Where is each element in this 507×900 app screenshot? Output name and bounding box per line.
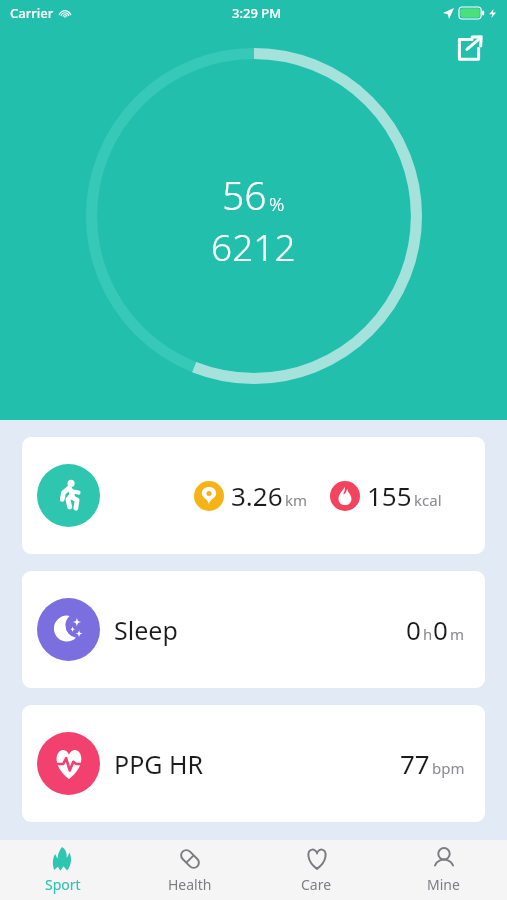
staticText: 6212 [211,221,296,271]
staticText: 56 [222,168,267,221]
staticText: Care [301,875,332,894]
button[interactable]: Sleep [22,571,485,688]
staticText: Carrier [10,4,54,22]
staticText: 155 [367,478,412,513]
staticText: 3:29 PM [232,4,282,22]
button[interactable]: Health [126,840,253,900]
staticText: Sport [45,875,81,894]
button[interactable]: Mine [380,840,507,900]
staticText: bpm [432,758,465,778]
staticText: Sleep [114,613,178,647]
staticText: h [423,624,433,644]
staticText: Health [168,875,212,894]
button[interactable]: Share [447,26,491,70]
staticText: 77 [400,746,430,781]
button[interactable]: PPG HR [22,705,485,822]
staticText: Mine [427,875,460,894]
staticText: 0 [433,612,448,647]
button[interactable]: 3.26 [22,437,485,554]
button[interactable]: Care [253,840,380,900]
staticText: kcal [414,490,442,510]
staticText: m [450,624,465,644]
button[interactable]: Sport [0,840,126,900]
staticText: PPG HR [114,747,204,781]
staticText: % [269,191,285,217]
staticText: km [285,490,308,510]
staticText: 3.26 [231,478,283,513]
staticText: 0 [406,612,421,647]
